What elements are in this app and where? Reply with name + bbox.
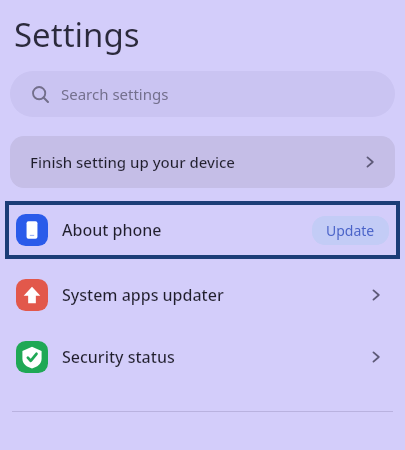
button[interactable]: Update xyxy=(312,216,389,245)
button[interactable]: Security status xyxy=(0,329,405,385)
button[interactable]: Search settings xyxy=(10,71,395,117)
staticText: Security status xyxy=(62,346,369,368)
button[interactable]: About phone xyxy=(5,201,400,259)
staticText: Update xyxy=(326,221,375,240)
button[interactable]: Finish setting up your device xyxy=(10,136,395,188)
staticText: Search settings xyxy=(61,84,169,104)
staticText: About phone xyxy=(62,219,312,241)
staticText: Finish setting up your device xyxy=(30,152,363,172)
staticText: System apps updater xyxy=(62,284,369,306)
staticText: Settings xyxy=(14,12,140,57)
button[interactable]: System apps updater xyxy=(0,267,405,323)
